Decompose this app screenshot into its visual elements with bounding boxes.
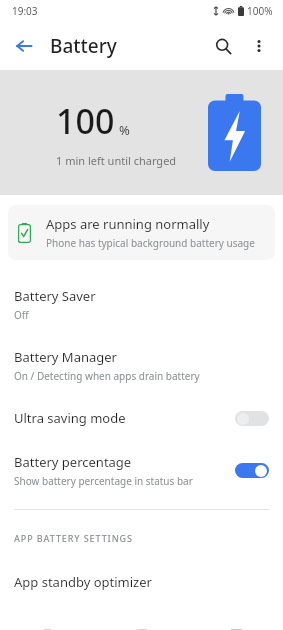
staticText: Battery: [50, 33, 117, 59]
button[interactable]: App standby optimizer: [0, 560, 283, 604]
staticText: Battery Manager: [14, 348, 117, 366]
staticText: Ultra saving mode: [14, 409, 126, 427]
staticText: Show battery percentage in status bar: [14, 474, 193, 488]
button[interactable]: Ultra saving mode: [0, 396, 283, 440]
button[interactable]: Ultra saving mode: [235, 411, 269, 426]
staticText: %: [119, 121, 130, 139]
button[interactable]: Search: [205, 28, 241, 64]
button[interactable]: Back: [6, 28, 42, 64]
staticText: Battery percentage: [14, 453, 132, 471]
staticText: 19:03: [12, 4, 38, 18]
staticText: On / Detecting when apps drain battery: [14, 369, 200, 383]
staticText: Phone has typical background battery usa…: [46, 236, 255, 250]
staticText: 1 min left until charged: [56, 153, 177, 168]
staticText: 100%: [247, 4, 273, 18]
button[interactable]: Battery Saver: [0, 274, 283, 335]
button[interactable]: Apps are running normally: [8, 205, 275, 260]
button[interactable]: Battery Manager: [0, 335, 283, 396]
button[interactable]: Close app after screen lock: [0, 604, 283, 630]
staticText: Apps are running normally: [46, 215, 210, 233]
staticText: Off: [14, 308, 29, 322]
staticText: APP BATTERY SETTINGS: [14, 532, 133, 544]
button[interactable]: Battery percentage: [235, 463, 269, 478]
staticText: App standby optimizer: [14, 573, 152, 591]
staticText: 100: [56, 98, 115, 144]
button[interactable]: Battery percentage: [0, 440, 283, 501]
button[interactable]: More options: [241, 28, 277, 64]
staticText: Battery Saver: [14, 287, 96, 305]
